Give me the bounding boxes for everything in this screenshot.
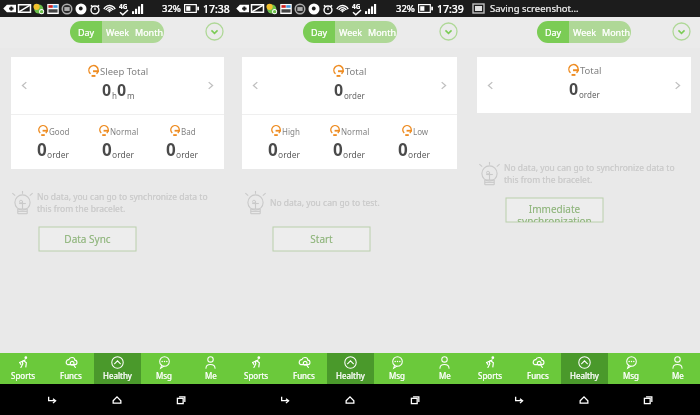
button[interactable]: Day (303, 21, 335, 43)
button[interactable]: Month (134, 21, 164, 43)
staticText: order (112, 149, 135, 161)
button[interactable]: Recents (168, 387, 194, 413)
staticText: 17:39 (437, 2, 464, 16)
button[interactable]: Msg (374, 353, 421, 384)
button[interactable]: Home (571, 387, 597, 413)
staticText: h (112, 90, 117, 101)
staticText: Month (368, 26, 396, 38)
staticText: Immediate synchronization (506, 202, 603, 222)
staticText: order (344, 90, 365, 101)
staticText: Funcs (60, 370, 82, 381)
staticText: Low (413, 126, 429, 137)
staticText: Healthy (103, 370, 132, 381)
button[interactable]: Me (421, 353, 467, 384)
button[interactable]: Me (655, 353, 700, 384)
staticText: 0 (102, 79, 112, 101)
button[interactable]: Expand (672, 22, 691, 41)
staticText: Me (672, 370, 684, 381)
button[interactable]: Healthy (561, 353, 608, 384)
staticText: Sports (11, 370, 36, 381)
staticText: High (282, 126, 300, 137)
button[interactable]: Home (337, 387, 363, 413)
button[interactable]: Day (537, 21, 569, 43)
staticText: order (579, 89, 600, 100)
staticText: Bad (181, 126, 196, 137)
staticText: Day (311, 26, 328, 38)
button[interactable]: Msg (608, 353, 655, 384)
staticText: Sports (478, 370, 503, 381)
button[interactable]: Healthy (327, 353, 374, 384)
staticText: 0 (166, 138, 176, 161)
staticText: order (278, 149, 301, 161)
staticText: order (343, 149, 366, 161)
staticText: Msg (156, 370, 173, 381)
button[interactable]: Msg (141, 353, 188, 384)
staticText: No data, you can go to test. (270, 197, 380, 209)
button[interactable]: Back (506, 387, 532, 413)
button[interactable]: Sports (0, 353, 47, 384)
button[interactable]: Data Sync (39, 227, 136, 251)
staticText: Day (78, 26, 95, 38)
staticText: Week (106, 26, 130, 38)
staticText: No data, you can go to synchronize data … (504, 162, 678, 186)
staticText: Month (602, 26, 630, 38)
staticText: Funcs (293, 370, 315, 381)
staticText: Healthy (336, 370, 365, 381)
staticText: Normal (110, 126, 139, 137)
button[interactable]: Expand (205, 22, 224, 41)
button[interactable]: Week (102, 21, 134, 43)
button[interactable]: Home (104, 387, 130, 413)
staticText: 0 (334, 79, 344, 101)
staticText: order (176, 149, 199, 161)
staticText: Week (573, 26, 597, 38)
staticText: 32% (162, 2, 181, 15)
staticText: 0 (117, 79, 127, 101)
staticText: Saving screenshot… (490, 2, 579, 15)
staticText: 0 (569, 78, 579, 100)
button[interactable]: Funcs (280, 353, 327, 384)
button[interactable]: Back (272, 387, 298, 413)
staticText: m (127, 90, 135, 101)
staticText: Msg (623, 370, 640, 381)
button[interactable]: Month (601, 21, 631, 43)
staticText: 0 (102, 138, 112, 161)
staticText: Month (135, 26, 163, 38)
staticText: Total (580, 64, 602, 77)
staticText: 0 (333, 138, 343, 161)
button[interactable]: Back (39, 387, 65, 413)
button[interactable]: Sports (467, 353, 514, 384)
button[interactable]: Sports (233, 353, 280, 384)
staticText: Me (439, 370, 451, 381)
staticText: Day (545, 26, 562, 38)
staticText: Sports (244, 370, 269, 381)
staticText: 0 (398, 138, 408, 161)
button[interactable]: Week (335, 21, 367, 43)
staticText: 17:38 (203, 2, 230, 16)
button[interactable]: Expand (439, 22, 458, 41)
staticText: 0 (37, 138, 47, 161)
button[interactable]: Immediate synchronization (506, 198, 603, 222)
staticText: order (47, 149, 70, 161)
button[interactable]: Week (569, 21, 601, 43)
button[interactable]: Healthy (94, 353, 141, 384)
staticText: Me (205, 370, 217, 381)
button[interactable]: Funcs (47, 353, 94, 384)
button[interactable]: Month (367, 21, 397, 43)
staticText: 32% (396, 2, 415, 15)
staticText: Total (345, 65, 367, 78)
staticText: Start (273, 232, 370, 246)
button[interactable]: Start (273, 227, 370, 251)
button[interactable]: Me (188, 353, 233, 384)
button[interactable]: Day (70, 21, 102, 43)
button[interactable]: Funcs (514, 353, 561, 384)
staticText: 4G (119, 2, 128, 11)
button[interactable]: Recents (635, 387, 661, 413)
staticText: 4G (352, 2, 361, 11)
staticText: Sleep Total (100, 65, 149, 78)
staticText: Funcs (527, 370, 549, 381)
staticText: Good (49, 126, 70, 137)
staticText: Data Sync (39, 232, 136, 246)
staticText: Week (339, 26, 363, 38)
staticText: order (408, 149, 431, 161)
button[interactable]: Recents (402, 387, 428, 413)
